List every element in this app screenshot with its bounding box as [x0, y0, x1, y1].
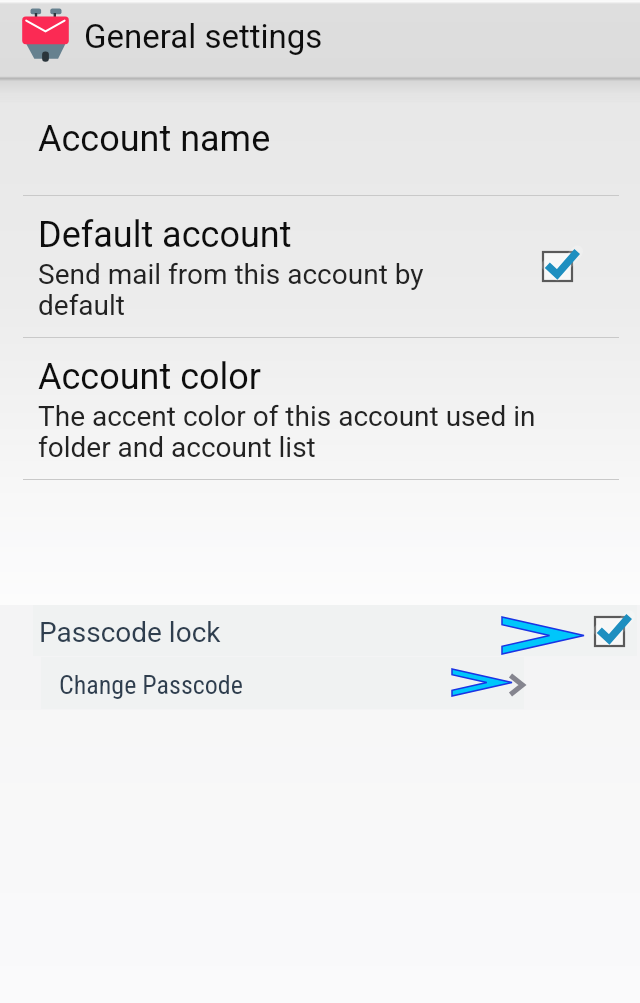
staticText: Change Passcode — [59, 670, 243, 700]
button[interactable]: Account color — [0, 338, 640, 479]
other: Open — [508, 673, 526, 699]
button[interactable]: Default account — [0, 196, 640, 337]
staticText: Account name — [38, 118, 271, 160]
staticText: Passcode lock — [39, 616, 221, 649]
button[interactable]: Navigate up — [14, 4, 76, 66]
staticText: Default account — [38, 214, 292, 256]
staticText: General settings — [84, 17, 323, 56]
staticText: Account color — [38, 356, 261, 398]
button[interactable]: Passcode lock — [33, 605, 637, 656]
staticText: The accent color of this account used in… — [38, 400, 548, 463]
staticText: Send mail from this account by default — [38, 258, 438, 321]
button[interactable]: Change Passcode — [41, 657, 524, 709]
button[interactable]: Account name — [0, 82, 640, 195]
